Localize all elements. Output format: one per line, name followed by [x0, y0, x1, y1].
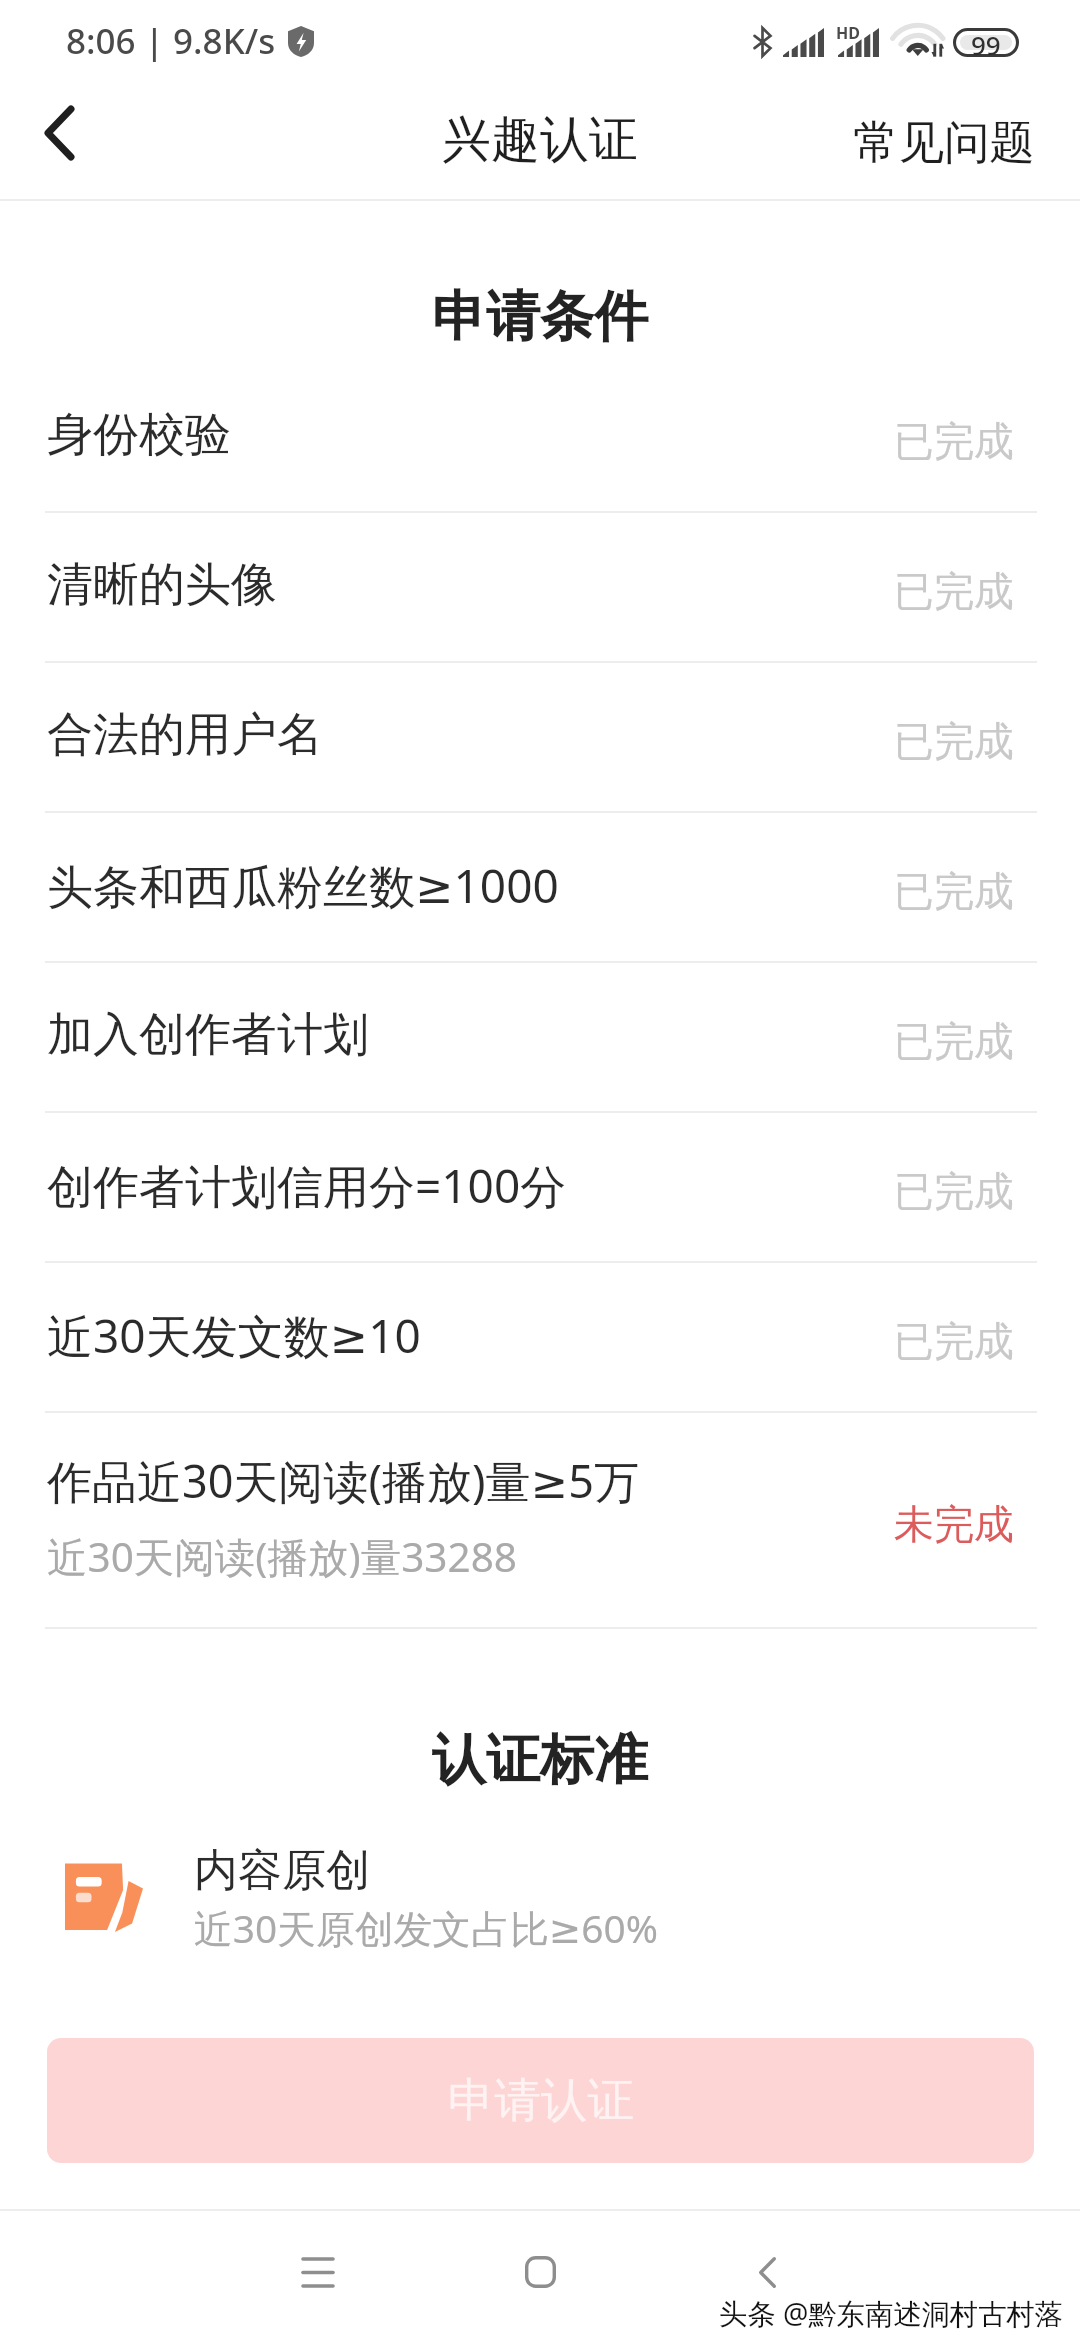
button[interactable]: 最近任务 [273, 2227, 363, 2317]
button[interactable]: 内容原创 [0, 1834, 1080, 1959]
staticText: 已完成 [894, 866, 1014, 916]
staticText: 已完成 [894, 566, 1014, 616]
button[interactable]: 头条和西瓜粉丝数≥1000 [0, 813, 1080, 963]
staticText: 身份校验 [47, 406, 231, 464]
staticText: 已完成 [894, 716, 1014, 766]
staticText: 已完成 [894, 1166, 1014, 1216]
staticText: 作品近30天阅读(播放)量≥5万 [47, 1450, 639, 1511]
staticText: 近30天原创发文占比≥60% [194, 1902, 658, 1955]
button[interactable]: 清晰的头像 [0, 513, 1080, 663]
staticText: 合法的用户名 [47, 706, 323, 764]
staticText: 申请条件 [0, 283, 1080, 351]
staticText: 头条 @黔东南述洞村古村落 [716, 2291, 1061, 2330]
button[interactable]: 合法的用户名 [0, 663, 1080, 813]
button[interactable]: 身份校验 [0, 363, 1080, 513]
staticText: 头条 @黔东南述洞村古村落 [719, 2294, 1064, 2333]
button[interactable]: 加入创作者计划 [0, 963, 1080, 1113]
staticText: 头条 @黔东南述洞村古村落 [722, 2297, 1067, 2336]
staticText: 认证标准 [0, 1726, 1080, 1794]
staticText: 头条 @黔东南述洞村古村落 [719, 2294, 1064, 2333]
button[interactable]: 返回 [722, 2227, 812, 2317]
staticText: 申请认证 [448, 2071, 634, 2130]
staticText: 已完成 [894, 1316, 1014, 1366]
staticText: 已完成 [894, 416, 1014, 466]
staticText: 头条和西瓜粉丝数≥1000 [47, 854, 559, 917]
staticText: 常见问题 [853, 114, 1035, 171]
button[interactable]: 常见问题 [853, 90, 1080, 200]
staticText: 创作者计划信用分=100分 [47, 1154, 567, 1217]
staticText: 加入创作者计划 [47, 1006, 369, 1064]
staticText: 内容原创 [194, 1843, 370, 1898]
staticText: 兴趣认证 [442, 109, 638, 171]
staticText: 99 [971, 27, 1001, 56]
staticText: 头条 @黔东南述洞村古村落 [719, 2297, 1064, 2336]
staticText: HD [836, 22, 860, 44]
staticText: 头条 @黔东南述洞村古村落 [722, 2294, 1067, 2333]
staticText: 近30天阅读(播放)量33288 [47, 1529, 517, 1584]
staticText: 近30天发文数≥10 [47, 1304, 421, 1367]
staticText: 已完成 [894, 1016, 1014, 1066]
staticText: 8:06 | 9.8K/s [66, 17, 276, 65]
staticText: 头条 @黔东南述洞村古村落 [722, 2291, 1067, 2330]
button[interactable]: 申请认证 [47, 2038, 1034, 2163]
staticText: 未完成 [894, 1499, 1014, 1549]
staticText: 头条 @黔东南述洞村古村落 [719, 2291, 1064, 2330]
staticText: 头条 @黔东南述洞村古村落 [716, 2297, 1061, 2336]
button[interactable]: 创作者计划信用分=100分 [0, 1113, 1080, 1263]
button[interactable]: 主页 [495, 2227, 585, 2317]
button[interactable]: 作品近30天阅读(播放)量≥5万 [0, 1413, 1080, 1629]
staticText: 头条 @黔东南述洞村古村落 [716, 2294, 1061, 2333]
button[interactable]: 近30天发文数≥10 [0, 1263, 1080, 1413]
staticText: 清晰的头像 [47, 556, 277, 614]
button[interactable]: 返回 [4, 90, 114, 200]
